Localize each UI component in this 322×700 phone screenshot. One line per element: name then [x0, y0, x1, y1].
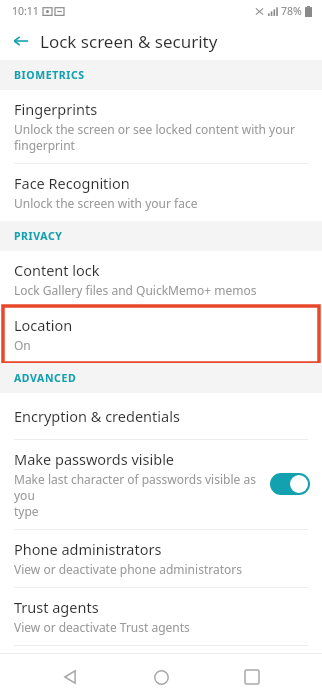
button[interactable]: Face Recognition: [0, 164, 322, 221]
staticText: Make last character of passwords visible…: [14, 471, 262, 519]
button[interactable]: Recent apps: [231, 656, 273, 698]
staticText: ADVANCED: [14, 371, 77, 385]
staticText: Unlock the screen or see locked content …: [14, 121, 295, 153]
staticText: Phone administrators: [14, 539, 162, 559]
staticText: 10:11: [12, 4, 39, 18]
staticText: Lock screen & security: [40, 30, 218, 53]
staticText: Encryption & credentials: [14, 406, 180, 426]
staticText: Unlock the screen with your face: [14, 195, 198, 211]
staticText: Trust agents: [14, 597, 99, 617]
staticText: BIOMETRICS: [14, 68, 85, 82]
button[interactable]: Content lock: [0, 251, 322, 306]
button[interactable]: Fingerprints: [0, 90, 322, 163]
button[interactable]: Location: [3, 306, 319, 363]
staticText: PRIVACY: [14, 229, 63, 243]
staticText: View or deactivate phone administrators: [14, 561, 242, 577]
button[interactable]: Back: [8, 28, 34, 54]
button[interactable]: Phone administrators: [0, 530, 322, 587]
staticText: Lock Gallery files and QuickMemo+ memos: [14, 282, 257, 298]
button[interactable]: Back: [49, 656, 91, 698]
button[interactable]: Make passwords visible: [0, 440, 322, 529]
button[interactable]: Trust agents: [0, 588, 322, 645]
staticText: 78%: [281, 4, 302, 18]
staticText: Face Recognition: [14, 173, 130, 193]
staticText: On: [14, 337, 31, 353]
staticText: Make passwords visible: [14, 449, 175, 469]
button[interactable]: Home: [140, 656, 182, 698]
button[interactable]: Make passwords visible toggle: [270, 473, 310, 495]
button[interactable]: Encryption & credentials: [0, 393, 322, 439]
staticText: Location: [14, 315, 73, 335]
staticText: Content lock: [14, 260, 100, 280]
staticText: View or deactivate Trust agents: [14, 619, 190, 635]
staticText: Fingerprints: [14, 99, 98, 119]
